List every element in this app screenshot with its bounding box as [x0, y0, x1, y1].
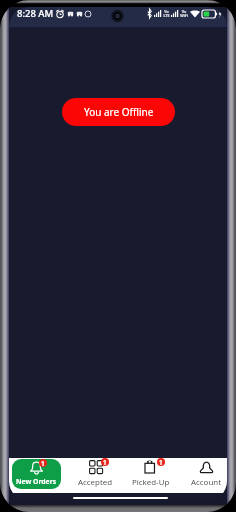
button[interactable]: 1	[70, 458, 120, 492]
staticText: Vo LTE	[163, 9, 170, 18]
staticText: 8:28 AM	[17, 7, 54, 20]
staticText: You are Offline	[84, 105, 154, 119]
staticText: New Orders	[16, 477, 57, 486]
button[interactable]: You are Offline	[62, 98, 175, 126]
button[interactable]: 1	[126, 458, 176, 492]
staticText: Accepted	[78, 477, 113, 488]
button[interactable]: 1	[12, 459, 61, 489]
staticText: 1	[159, 458, 163, 466]
staticText: Picked-Up	[132, 477, 170, 488]
staticText: 1	[103, 458, 107, 466]
staticText: 1	[41, 459, 45, 467]
button[interactable]: Account	[181, 458, 227, 492]
staticText: Vo WiFi	[180, 9, 188, 18]
staticText: Account	[191, 477, 221, 488]
